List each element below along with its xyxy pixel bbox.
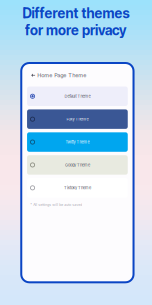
staticText: Different themes	[22, 5, 129, 22]
staticText: Googy Theme	[65, 162, 90, 167]
staticText: Tiktoky Theme	[64, 185, 91, 190]
staticText: for more privacy	[25, 22, 127, 38]
button[interactable]: Foxy Theme	[27, 109, 128, 129]
button[interactable]: Default Theme	[27, 86, 128, 106]
button[interactable]: Tiktoky Theme	[27, 178, 128, 198]
button[interactable]: Twitty Theme	[27, 132, 128, 152]
staticText: * All settings will be auto saved	[30, 203, 82, 207]
staticText: Twitty Theme	[65, 140, 89, 144]
button[interactable]: Googy Theme	[27, 155, 128, 175]
button[interactable]: Back	[29, 69, 37, 81]
staticText: Home Page Theme	[37, 72, 86, 78]
staticText: Foxy Theme	[66, 117, 88, 121]
staticText: Default Theme	[64, 94, 90, 99]
